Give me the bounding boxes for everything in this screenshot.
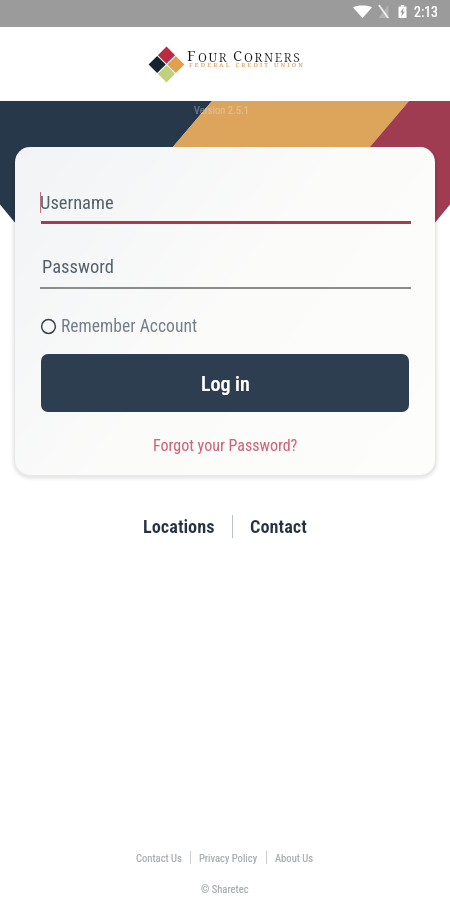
button[interactable]: Contact [250, 516, 307, 537]
button[interactable]: Forgot your Password? [15, 430, 435, 460]
staticText: Locations [143, 516, 215, 537]
staticText: Username [40, 192, 114, 214]
button[interactable]: Privacy Policy [199, 852, 258, 864]
staticText: Version 2.5.1 [194, 104, 249, 116]
staticText: OUR [198, 49, 229, 65]
button[interactable]: Log in [41, 354, 409, 412]
button[interactable]: About Us [275, 852, 314, 864]
staticText: C [233, 45, 244, 65]
staticText: Password [42, 256, 114, 278]
staticText: 2:13 [414, 4, 439, 20]
button[interactable]: Locations [143, 516, 215, 537]
staticText: © Sharetec [201, 883, 249, 895]
staticText: Forgot your Password? [153, 436, 298, 455]
staticText: Contact Us [136, 852, 182, 864]
staticText: ORNERS [244, 49, 302, 65]
button[interactable]: Contact Us [136, 852, 182, 864]
staticText: F [187, 45, 198, 65]
button[interactable]: Remember Account [40, 316, 198, 337]
staticText: Log in [201, 372, 250, 395]
staticText: Contact [250, 516, 307, 537]
staticText: Privacy Policy [199, 852, 258, 864]
staticText: FEDERAL CREDIT UNION [189, 61, 306, 69]
staticText: About Us [275, 852, 314, 864]
staticText: Remember Account [61, 316, 198, 337]
